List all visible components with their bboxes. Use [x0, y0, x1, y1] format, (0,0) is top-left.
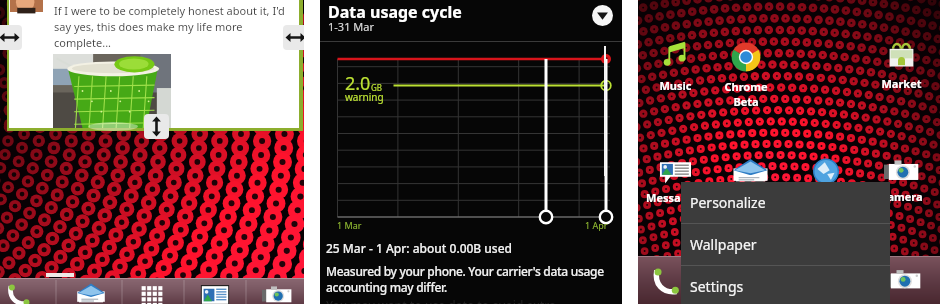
button[interactable]: Browser: [796, 156, 856, 204]
staticText: Settings: [690, 277, 744, 296]
staticText: 2.0: [345, 71, 371, 96]
staticText: 1 Mar: [337, 219, 362, 231]
button[interactable]: Resize: [144, 114, 169, 139]
staticText: Messaging: [646, 190, 705, 205]
button[interactable]: Data usage cycle: [320, 0, 622, 42]
staticText: 25 Mar - 1 Apr: about 0.00B used: [326, 240, 513, 256]
button[interactable]: If I were to be completely honest about …: [9, 0, 299, 128]
button[interactable]: Resize: [283, 25, 304, 50]
button[interactable]: Chrome: [716, 37, 776, 109]
staticText: You may want to use data to avoid extra: [326, 297, 556, 304]
button[interactable]: Personalize: [681, 182, 890, 223]
button[interactable]: Mail: [76, 281, 106, 304]
button[interactable]: Market: [871, 40, 931, 91]
button[interactable]: Camera: [871, 155, 931, 204]
button[interactable]: Resize: [0, 25, 22, 50]
staticText: Market: [881, 76, 922, 91]
button[interactable]: Wallpaper: [681, 224, 890, 265]
staticText: Beta: [733, 94, 759, 109]
button[interactable]: Phone: [651, 264, 683, 296]
staticText: If I were to be completely honest about …: [54, 3, 299, 50]
button[interactable]: Expand data usage cycle: [592, 5, 613, 26]
staticText: Music: [659, 78, 692, 93]
button[interactable]: Camera: [262, 282, 292, 304]
staticText: Data usage cycle: [328, 1, 462, 23]
staticText: GB: [371, 82, 383, 93]
staticText: Personalize: [690, 193, 766, 212]
staticText: Measured by your phone. Your carrier's d…: [326, 263, 618, 295]
button[interactable]: News: [200, 282, 230, 304]
staticText: 1 Apr: [585, 219, 608, 231]
staticText: Wallpaper: [690, 235, 757, 254]
staticText: warning: [345, 90, 384, 104]
button[interactable]: Phone: [6, 281, 33, 304]
staticText: Chrome: [724, 79, 768, 94]
staticText: 1-31 Mar: [328, 19, 374, 34]
button[interactable]: Camera: [886, 265, 921, 295]
button[interactable]: Settings: [681, 266, 890, 304]
staticText: Camera: [880, 189, 923, 204]
staticText: Mail: [738, 189, 762, 204]
button[interactable]: Mail: [720, 156, 780, 204]
button[interactable]: Music: [645, 38, 705, 93]
button[interactable]: Messaging: [645, 155, 705, 205]
button[interactable]: All apps: [139, 282, 165, 304]
